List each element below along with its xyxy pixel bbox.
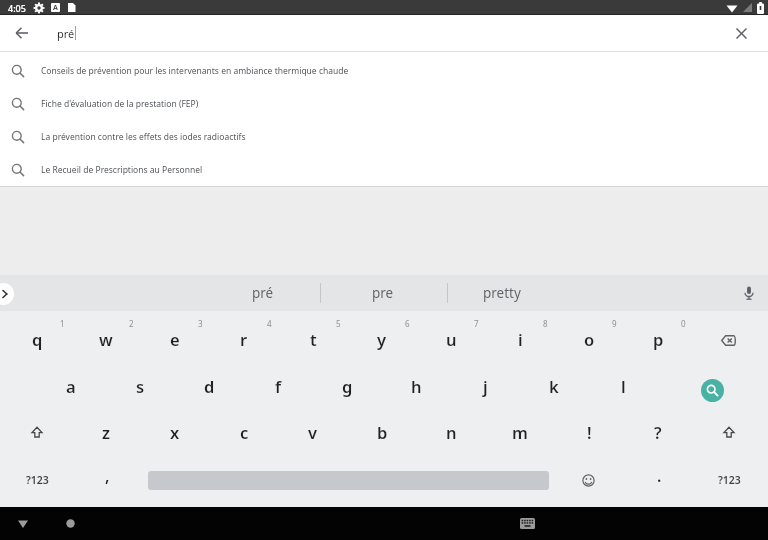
button[interactable]: ?123 [700, 460, 758, 500]
staticText: pré [252, 284, 274, 302]
button[interactable]: ! [561, 412, 617, 452]
button[interactable]: a [43, 366, 99, 406]
staticText: 8 [543, 318, 548, 329]
button[interactable] [13, 412, 61, 452]
button[interactable]: m [492, 412, 548, 452]
staticText: 7 [474, 318, 479, 329]
button[interactable]: , [87, 456, 127, 496]
staticText: 4:05 [8, 2, 26, 14]
staticText: y [377, 328, 387, 350]
button[interactable]: l [595, 366, 651, 406]
staticText: . [657, 465, 662, 487]
staticText: pretty [483, 284, 521, 302]
staticText: o [584, 328, 595, 350]
button[interactable]: v [285, 412, 341, 452]
staticText: 2 [129, 318, 134, 329]
staticText: Le Recueil de Prescriptions au Personnel [41, 164, 203, 176]
staticText: ? [654, 421, 662, 443]
button[interactable]: d [181, 366, 237, 406]
staticText: l [621, 375, 626, 397]
staticText: pre [372, 284, 394, 302]
button[interactable] [54, 507, 86, 540]
button[interactable]: g [319, 366, 375, 406]
button[interactable] [735, 279, 763, 307]
button[interactable]: x [147, 412, 203, 452]
staticText: f [275, 375, 282, 397]
staticText: n [446, 421, 457, 443]
button[interactable]: c [216, 412, 272, 452]
button[interactable]: b [354, 412, 410, 452]
button[interactable]: j [457, 366, 513, 406]
button[interactable]: o [561, 319, 617, 359]
staticText: b [377, 421, 388, 443]
staticText: s [136, 375, 145, 397]
staticText: e [170, 328, 180, 350]
staticText: c [240, 421, 249, 443]
staticText: d [204, 375, 215, 397]
button[interactable]: Fiche d'évaluation de la prestation (FEP… [0, 87, 768, 120]
staticText: h [411, 375, 422, 397]
staticText: 4 [267, 318, 272, 329]
button[interactable]: . [639, 456, 679, 496]
staticText: j [483, 375, 488, 397]
staticText: w [99, 328, 113, 350]
staticText: ! [587, 421, 592, 443]
button[interactable]: ?123 [8, 460, 66, 500]
staticText: 0 [681, 318, 686, 329]
button[interactable]: u [423, 319, 479, 359]
staticText: Conseils de prévention pour les interven… [41, 65, 349, 77]
button[interactable] [705, 320, 751, 360]
button[interactable]: f [250, 366, 306, 406]
button[interactable]: ? [630, 412, 686, 452]
staticText: A [53, 3, 58, 12]
staticText: a [66, 375, 76, 397]
staticText: t [310, 328, 317, 350]
staticText: x [170, 421, 180, 443]
button[interactable]: y [354, 319, 410, 359]
button[interactable]: Le Recueil de Prescriptions au Personnel [0, 153, 768, 186]
button[interactable]: q [9, 319, 65, 359]
button[interactable] [511, 507, 543, 540]
button[interactable]: t [285, 319, 341, 359]
staticText: pré [57, 26, 75, 41]
staticText: , [105, 465, 110, 487]
button[interactable]: r [216, 319, 272, 359]
button[interactable]: pretty [457, 276, 547, 310]
staticText: 1 [60, 318, 65, 329]
staticText: r [240, 328, 248, 350]
button[interactable]: e [147, 319, 203, 359]
button[interactable]: z [78, 412, 134, 452]
staticText: i [518, 328, 523, 350]
staticText: q [32, 328, 43, 350]
staticText: u [446, 328, 457, 350]
button[interactable] [6, 17, 38, 49]
button[interactable]: k [526, 366, 582, 406]
staticText: g [342, 375, 353, 397]
button[interactable]: n [423, 412, 479, 452]
button[interactable]: pre [338, 276, 428, 310]
button[interactable] [7, 507, 39, 540]
button[interactable] [688, 368, 736, 412]
button[interactable] [566, 460, 610, 500]
staticText: ?123 [26, 473, 49, 487]
button[interactable]: La prévention contre les effets des iode… [0, 120, 768, 153]
button[interactable] [0, 283, 14, 305]
staticText: 5 [336, 318, 341, 329]
staticText: k [549, 375, 559, 397]
button[interactable]: w [78, 319, 134, 359]
staticText: 9 [612, 318, 617, 329]
button[interactable]: Conseils de prévention pour les interven… [0, 54, 768, 87]
button[interactable]: s [112, 366, 168, 406]
staticText: 6 [405, 318, 410, 329]
button[interactable]: i [492, 319, 548, 359]
staticText: Fiche d'évaluation de la prestation (FEP… [41, 98, 199, 110]
button[interactable] [705, 412, 753, 452]
button[interactable]: h [388, 366, 444, 406]
button[interactable] [725, 17, 757, 49]
button[interactable]: pré [218, 276, 308, 310]
button[interactable]: p [630, 319, 686, 359]
staticText: p [653, 328, 664, 350]
staticText: v [308, 421, 318, 443]
staticText: 3 [198, 318, 203, 329]
